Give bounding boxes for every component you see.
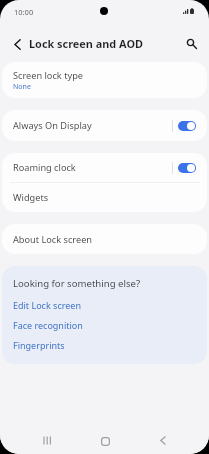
staticText: Fingerprints xyxy=(13,339,65,351)
staticText: 10:00 xyxy=(14,7,34,17)
button[interactable]: Screen lock type xyxy=(2,62,207,98)
staticText: Widgets xyxy=(13,191,49,204)
staticText: Looking for something else? xyxy=(13,277,141,290)
staticText: None xyxy=(13,82,31,92)
staticText: Lock screen and AOD xyxy=(29,36,143,51)
staticText: Edit Lock screen xyxy=(13,299,81,311)
button[interactable]: Widgets xyxy=(2,183,207,212)
staticText: Screen lock type xyxy=(13,69,83,82)
button[interactable]: Always On Display xyxy=(2,110,207,141)
button[interactable]: About Lock screen xyxy=(2,224,207,254)
button[interactable]: Navigate up xyxy=(5,32,29,56)
button[interactable]: Fingerprints xyxy=(13,338,196,351)
button[interactable]: Home xyxy=(89,425,121,454)
button[interactable]: Recent apps xyxy=(31,424,63,454)
button[interactable]: Face recognition xyxy=(13,318,196,331)
button[interactable]: Edit Lock screen xyxy=(13,298,196,311)
staticText: Always On Display xyxy=(13,119,172,132)
button[interactable]: Toggle on xyxy=(178,121,196,131)
staticText: About Lock screen xyxy=(13,233,93,246)
button[interactable]: Roaming clock xyxy=(2,153,207,182)
staticText: Roaming clock xyxy=(13,161,172,174)
button[interactable]: Toggle on xyxy=(178,163,196,173)
staticText: Face recognition xyxy=(13,319,83,331)
button[interactable]: Back xyxy=(147,424,179,454)
button[interactable]: Search xyxy=(180,32,204,56)
